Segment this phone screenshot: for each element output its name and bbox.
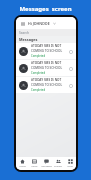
button[interactable]: Message status xyxy=(68,83,73,88)
button[interactable]: #TODAY SMS IS NOT xyxy=(16,43,76,59)
button[interactable]: #TODAY SMS IS NOT xyxy=(16,77,76,93)
staticText: COMING TO SCHOOL xyxy=(31,83,63,87)
staticText: Completed xyxy=(31,88,46,92)
staticText: #TODAY SMS IS NOT xyxy=(31,61,62,65)
staticText: Completed xyxy=(31,71,46,75)
staticText: Search xyxy=(19,31,30,35)
staticText: Messages xyxy=(41,165,52,168)
button[interactable]: #TODAY SMS IS NOT xyxy=(16,60,76,76)
staticText: COMING TO SCHOOL xyxy=(31,66,63,70)
button[interactable]: Groups xyxy=(52,157,64,170)
staticText: #TODAY SMS IS NOT xyxy=(31,78,62,82)
button[interactable]: Messages xyxy=(40,157,52,170)
button[interactable]: Message status xyxy=(68,49,73,54)
staticText: Messages screen xyxy=(19,5,72,13)
button[interactable]: More xyxy=(64,157,76,170)
button[interactable]: Menu xyxy=(19,20,26,27)
staticText: More xyxy=(67,165,73,168)
button[interactable]: Expand account xyxy=(52,21,57,26)
staticText: Groups xyxy=(54,165,62,168)
button[interactable]: Message status xyxy=(68,66,73,71)
button[interactable]: Inbox xyxy=(28,157,40,170)
staticText: Messages xyxy=(19,37,38,42)
button[interactable]: Search xyxy=(16,29,76,36)
staticText: Home xyxy=(19,165,26,168)
staticText: Completed xyxy=(31,54,46,58)
staticText: COMING TO SCHOOL xyxy=(31,49,63,53)
staticText: Hi JOHNDOE xyxy=(28,21,50,26)
staticText: #TODAY SMS IS NOT xyxy=(31,44,62,48)
staticText: Inbox xyxy=(31,165,38,168)
button[interactable]: Home xyxy=(16,157,28,170)
